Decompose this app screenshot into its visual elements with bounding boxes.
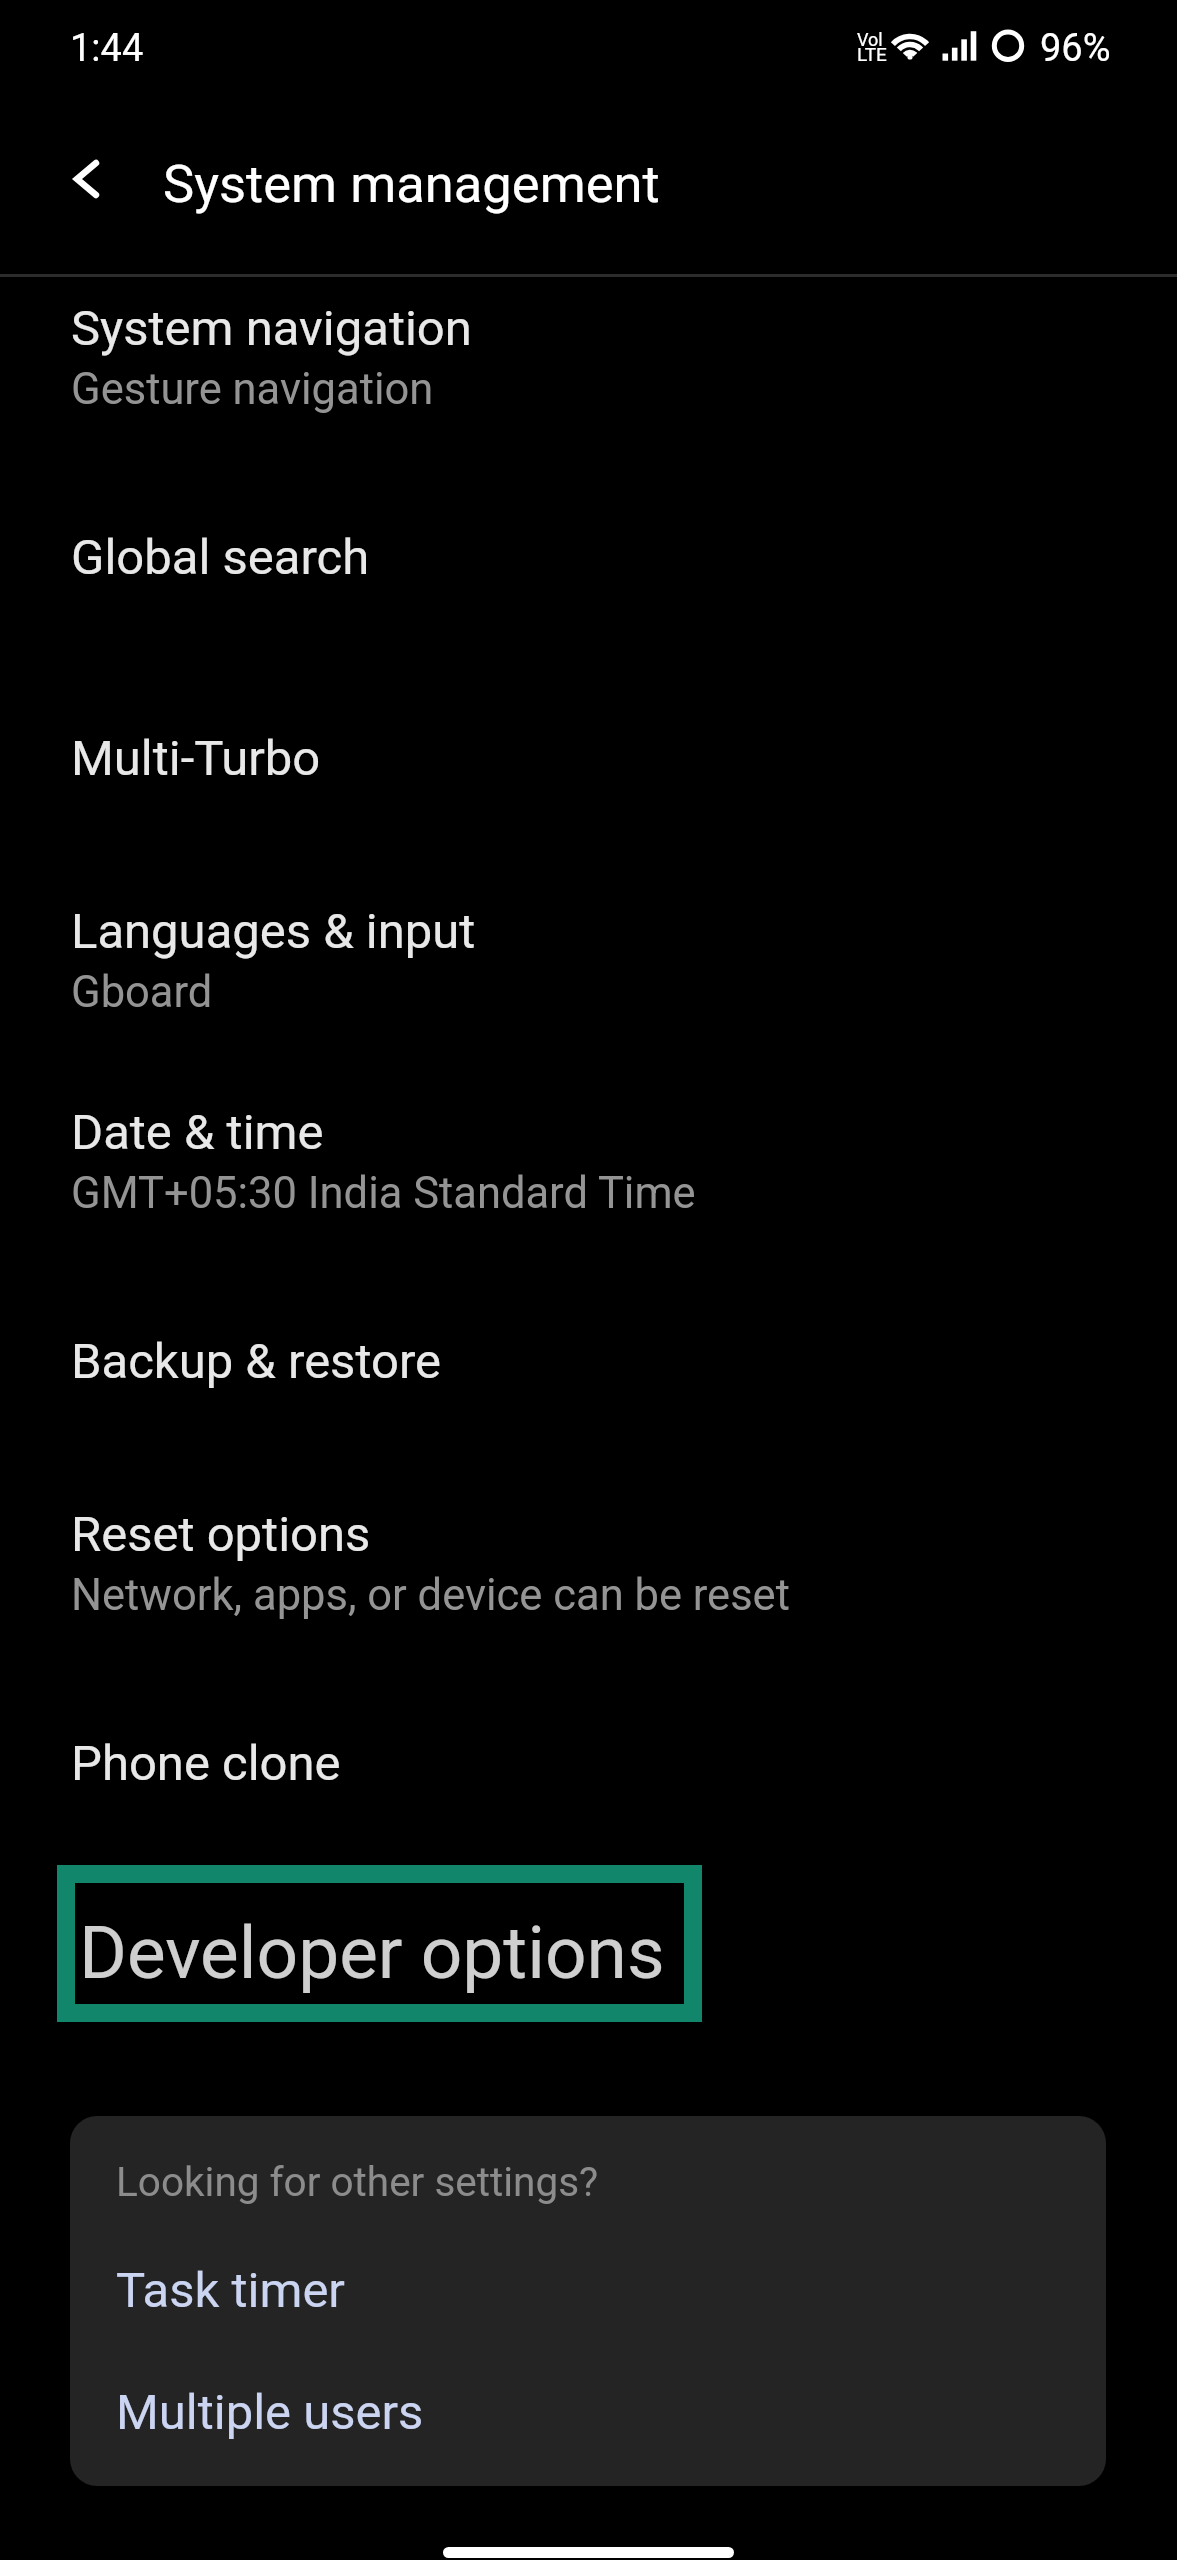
staticText: Vol bbox=[857, 29, 883, 50]
staticText: Backup & restore bbox=[71, 1333, 442, 1390]
button[interactable]: Global search bbox=[0, 454, 1177, 655]
staticText: 1:44 bbox=[70, 26, 144, 71]
button[interactable]: Back bbox=[38, 135, 110, 207]
staticText: Multiple users bbox=[116, 2384, 424, 2441]
button[interactable]: Date & time bbox=[0, 1057, 1177, 1258]
staticText: Task timer bbox=[116, 2262, 345, 2319]
button[interactable]: Task timer bbox=[70, 2244, 1106, 2344]
staticText: System navigation bbox=[71, 300, 472, 357]
staticText: System management bbox=[163, 153, 660, 215]
staticText: GMT+05:30 India Standard Time bbox=[71, 1168, 696, 1219]
staticText: 96% bbox=[1040, 26, 1111, 71]
staticText: Phone clone bbox=[71, 1735, 341, 1792]
button[interactable]: Backup & restore bbox=[0, 1258, 1177, 1459]
button[interactable]: Developer options bbox=[0, 1861, 1177, 2062]
staticText: Languages & input bbox=[71, 903, 476, 960]
button[interactable]: Phone clone bbox=[0, 1660, 1177, 1861]
staticText: Developer options bbox=[79, 1910, 665, 1996]
button[interactable]: Languages & input bbox=[0, 856, 1177, 1057]
button[interactable]: Reset options bbox=[0, 1459, 1177, 1660]
staticText: Global search bbox=[71, 529, 370, 586]
button[interactable]: System navigation bbox=[0, 253, 1177, 454]
staticText: Looking for other settings? bbox=[116, 2158, 599, 2205]
staticText: Date & time bbox=[71, 1104, 324, 1161]
staticText: Gboard bbox=[71, 967, 213, 1018]
button[interactable]: Multi-Turbo bbox=[0, 655, 1177, 856]
staticText: Multi-Turbo bbox=[71, 730, 321, 787]
button[interactable]: Multiple users bbox=[70, 2366, 1106, 2466]
staticText: Gesture navigation bbox=[71, 364, 434, 415]
staticText: LTE bbox=[857, 43, 887, 65]
staticText: Reset options bbox=[71, 1506, 371, 1563]
staticText: Network, apps, or device can be reset bbox=[71, 1570, 790, 1621]
